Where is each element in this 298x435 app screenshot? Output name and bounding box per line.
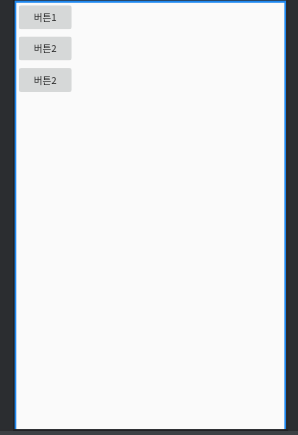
- staticText: 버튼2: [34, 41, 57, 55]
- staticText: 버튼2: [34, 73, 57, 87]
- button[interactable]: 버튼2: [19, 68, 72, 92]
- button[interactable]: 버튼1: [19, 5, 72, 29]
- staticText: 버튼1: [34, 10, 57, 24]
- button[interactable]: 버튼2: [19, 36, 72, 60]
